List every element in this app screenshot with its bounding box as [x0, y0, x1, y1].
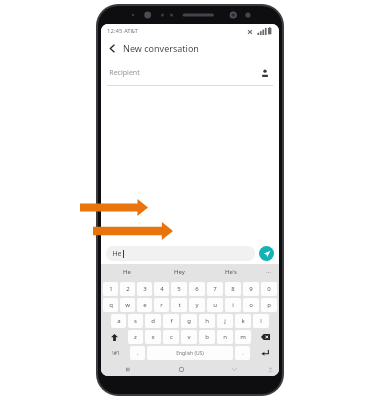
button[interactable]: u	[207, 298, 223, 312]
button[interactable]: Back	[101, 37, 123, 59]
button[interactable]: 3	[137, 282, 152, 296]
button[interactable]: x	[145, 330, 161, 344]
staticText: 1	[109, 285, 113, 293]
button[interactable]: b	[199, 330, 215, 344]
button[interactable]: 8	[225, 282, 241, 296]
staticText: 0	[267, 285, 271, 293]
button[interactable]: He	[101, 264, 153, 280]
staticText: 5	[177, 285, 181, 293]
staticText: r	[160, 301, 163, 309]
button[interactable]: q	[103, 298, 118, 312]
staticText: 6	[195, 285, 199, 293]
staticText: q	[109, 301, 113, 309]
button[interactable]: ,	[130, 346, 145, 360]
button[interactable]: p	[261, 298, 277, 312]
button[interactable]: 1	[103, 282, 118, 296]
staticText: b	[205, 333, 209, 341]
button[interactable]: More suggestions	[257, 264, 279, 280]
staticText: 12:45 AT&T	[107, 27, 138, 35]
button[interactable]: g	[181, 314, 197, 328]
button[interactable]: Backspace	[253, 330, 277, 344]
staticText: i	[232, 301, 234, 309]
button[interactable]: !#1	[103, 346, 128, 360]
button[interactable]: Shift	[103, 330, 126, 344]
staticText: He's	[225, 268, 237, 276]
button[interactable]: k	[235, 314, 251, 328]
button[interactable]: 7	[207, 282, 223, 296]
button[interactable]: Send	[259, 246, 274, 261]
staticText: c	[170, 333, 173, 341]
staticText: English (US)	[176, 350, 204, 357]
button[interactable]: y	[189, 298, 205, 312]
button[interactable]: Recipient	[101, 64, 279, 82]
button[interactable]: Add contact	[259, 67, 271, 79]
button[interactable]: Recents	[101, 362, 155, 376]
button[interactable]: 2	[120, 282, 135, 296]
button[interactable]: f	[163, 314, 179, 328]
button[interactable]: Enter	[252, 346, 277, 360]
staticText: h	[205, 317, 209, 325]
button[interactable]: j	[217, 314, 233, 328]
staticText: Recipient	[109, 68, 140, 78]
staticText: k	[241, 317, 245, 325]
button[interactable]: English (US)	[147, 346, 233, 360]
button[interactable]: h	[199, 314, 215, 328]
staticText: y	[195, 301, 199, 309]
staticText: He	[123, 268, 131, 276]
staticText: n	[223, 333, 227, 341]
staticText: 4	[160, 285, 164, 293]
staticText: .	[242, 350, 244, 357]
staticText: x	[151, 333, 155, 341]
staticText: 3	[143, 285, 147, 293]
button[interactable]: l	[253, 314, 269, 328]
staticText: He	[112, 249, 122, 259]
staticText: o	[249, 301, 253, 309]
button[interactable]: t	[171, 298, 187, 312]
button[interactable]: i	[225, 298, 241, 312]
staticText: e	[143, 301, 147, 309]
button[interactable]: He	[106, 246, 255, 261]
staticText: a	[117, 317, 121, 325]
staticText: New conversation	[123, 42, 199, 54]
button[interactable]: .	[235, 346, 250, 360]
staticText: z	[134, 333, 137, 341]
staticText: !#1	[112, 350, 120, 357]
button[interactable]: z	[128, 330, 143, 344]
staticText: m	[240, 333, 246, 341]
staticText: f	[170, 317, 173, 325]
staticText: ,	[137, 350, 139, 357]
button[interactable]: m	[235, 330, 251, 344]
button[interactable]: 0	[261, 282, 277, 296]
staticText: t	[178, 301, 181, 309]
staticText: g	[187, 317, 191, 325]
button[interactable]: Hide keyboard	[261, 362, 279, 376]
button[interactable]: v	[181, 330, 197, 344]
button[interactable]: n	[217, 330, 233, 344]
button[interactable]: 6	[189, 282, 205, 296]
button[interactable]: Home	[155, 362, 208, 376]
staticText: p	[267, 301, 271, 309]
button[interactable]: r	[154, 298, 169, 312]
staticText: j	[224, 317, 226, 325]
button[interactable]: a	[111, 314, 126, 328]
staticText: ···	[266, 268, 271, 276]
button[interactable]: o	[243, 298, 259, 312]
staticText: 8	[231, 285, 235, 293]
button[interactable]: 9	[243, 282, 259, 296]
button[interactable]: d	[145, 314, 161, 328]
button[interactable]: 5	[171, 282, 187, 296]
button[interactable]: He's	[205, 264, 257, 280]
staticText: Hey	[174, 268, 185, 276]
staticText: 9	[249, 285, 253, 293]
button[interactable]: e	[137, 298, 152, 312]
button[interactable]: Hey	[153, 264, 205, 280]
button[interactable]: s	[128, 314, 143, 328]
button[interactable]: 4	[154, 282, 169, 296]
staticText: 2	[126, 285, 130, 293]
button[interactable]: c	[163, 330, 179, 344]
staticText: v	[187, 333, 191, 341]
staticText: d	[151, 317, 155, 325]
button[interactable]: w	[120, 298, 135, 312]
staticText: l	[260, 317, 262, 325]
